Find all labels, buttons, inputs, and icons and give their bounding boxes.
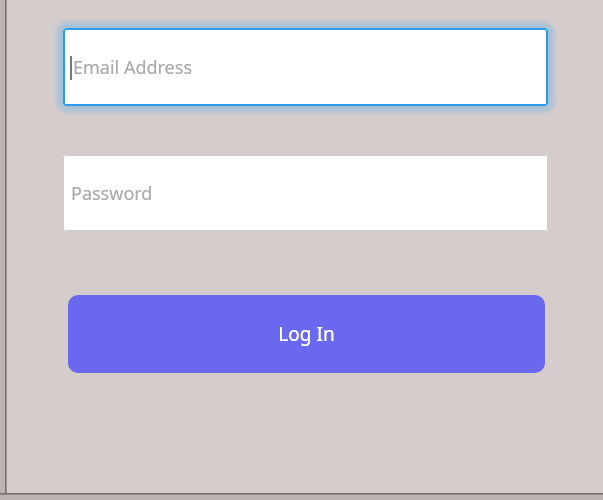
staticText: Log In xyxy=(278,321,335,347)
button[interactable]: Log In xyxy=(68,295,545,373)
staticText: Password xyxy=(71,181,153,206)
button[interactable]: Password xyxy=(63,155,548,231)
staticText: Email Address xyxy=(73,55,193,80)
button[interactable]: Email Address xyxy=(63,28,548,106)
